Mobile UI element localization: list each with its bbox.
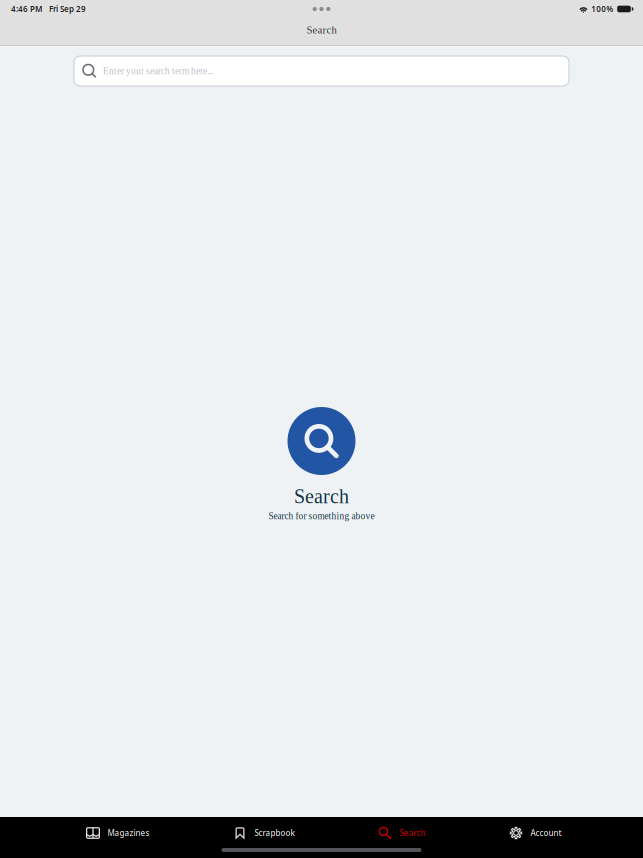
button[interactable]: Scrapbook bbox=[232, 822, 294, 844]
staticText: Scrapbook bbox=[254, 828, 294, 838]
button[interactable]: Account bbox=[508, 822, 561, 844]
staticText: Search bbox=[306, 24, 336, 36]
staticText: 4:46 PM bbox=[11, 4, 42, 14]
staticText: Magazines bbox=[107, 828, 149, 838]
staticText: 100% bbox=[591, 4, 613, 14]
button[interactable]: Multitasking controls bbox=[301, 2, 341, 16]
staticText: Search bbox=[399, 828, 425, 838]
staticText: Account bbox=[530, 828, 561, 838]
button[interactable]: Magazines bbox=[85, 822, 149, 844]
staticText: Search for something above bbox=[268, 511, 374, 521]
staticText: Enter your search term here... bbox=[103, 66, 213, 76]
staticText: Fri Sep 29 bbox=[49, 4, 86, 14]
button[interactable]: Search bbox=[377, 822, 425, 844]
staticText: Search bbox=[294, 485, 349, 507]
button[interactable]: Enter your search term here... bbox=[74, 56, 569, 86]
